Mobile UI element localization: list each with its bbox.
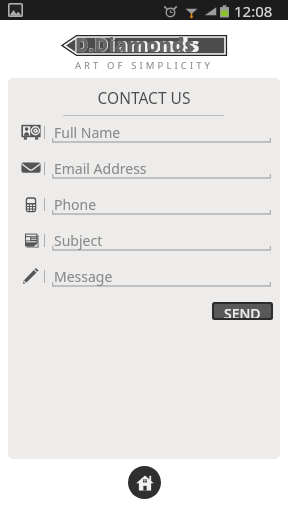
- button[interactable]: SEND: [214, 304, 271, 318]
- staticText: D.Diamonds: [75, 32, 195, 58]
- staticText: SEND: [224, 304, 261, 318]
- staticText: ART OF SIMPLICITY: [44, 59, 244, 72]
- staticText: 12:08: [234, 1, 273, 21]
- button[interactable]: Email Address: [8, 152, 280, 188]
- staticText: Phone: [54, 195, 97, 214]
- staticText: Message: [54, 267, 113, 286]
- staticText: CONTACT US: [8, 87, 280, 108]
- staticText: Subject: [54, 231, 103, 250]
- staticText: D.Diamonds: [74, 31, 200, 58]
- staticText: Email Address: [54, 159, 147, 178]
- button[interactable]: Phone: [8, 188, 280, 224]
- staticText: Full Name: [54, 123, 121, 142]
- button[interactable]: Message: [8, 260, 280, 296]
- button[interactable]: Full Name: [8, 116, 280, 152]
- button[interactable]: Subject: [8, 224, 280, 260]
- button[interactable]: Home: [128, 466, 161, 499]
